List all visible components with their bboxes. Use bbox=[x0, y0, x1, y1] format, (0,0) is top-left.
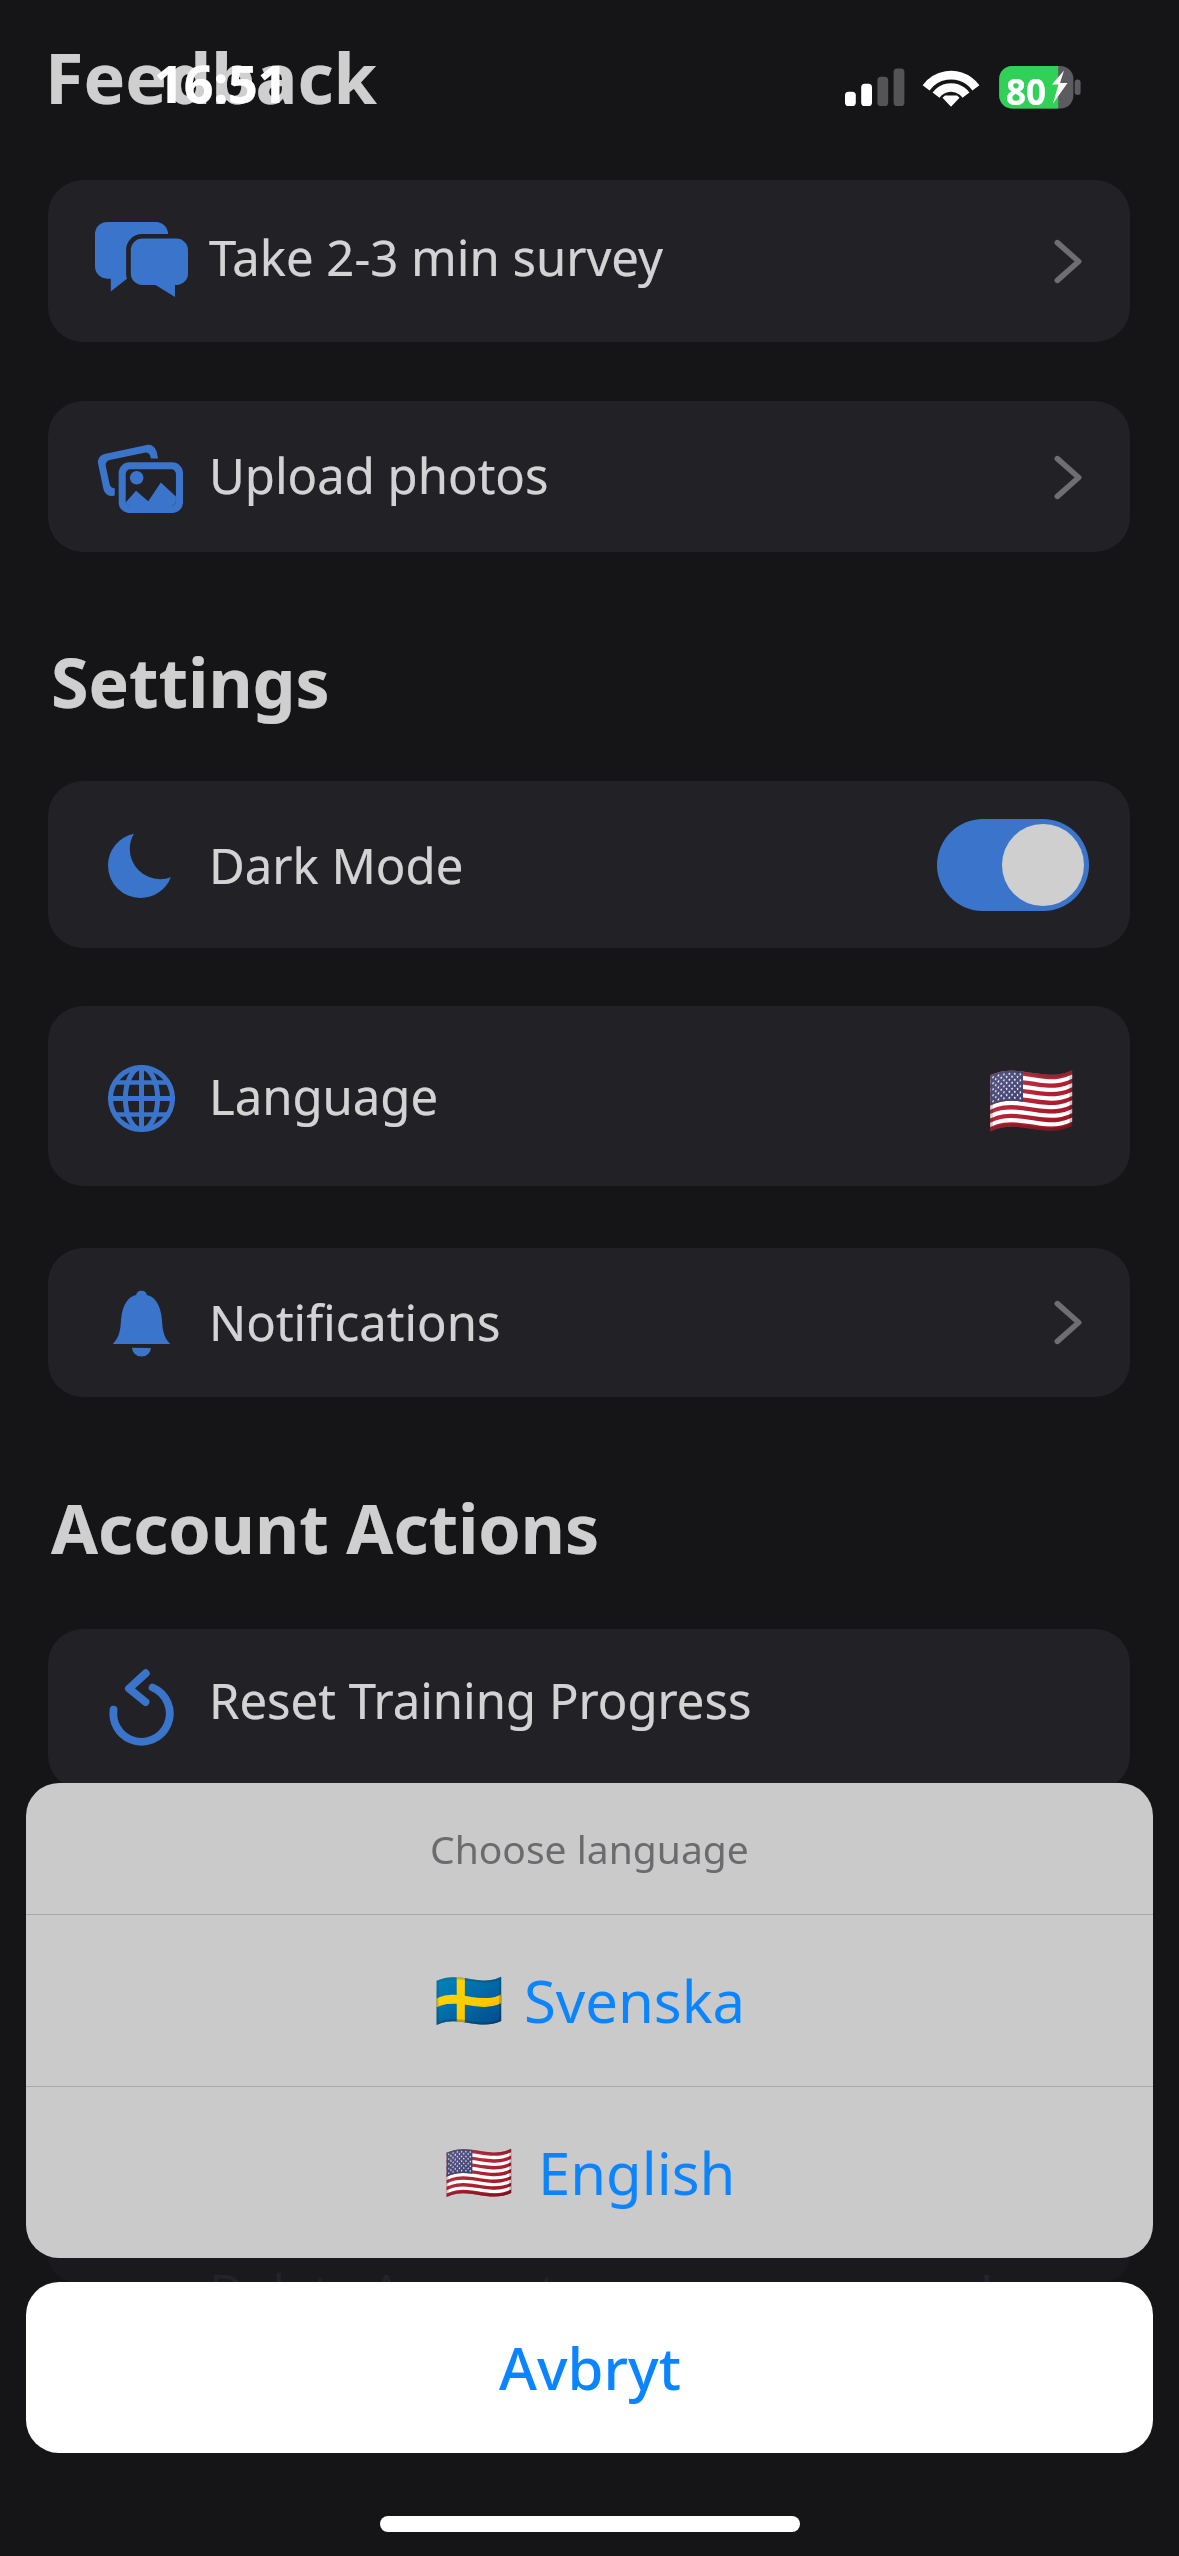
button[interactable]: 🇸🇪 bbox=[26, 1915, 1153, 2086]
button[interactable]: Language bbox=[48, 1006, 1130, 1186]
button[interactable]: Upload photos bbox=[48, 401, 1130, 552]
staticText: 🇺🇸 bbox=[987, 1059, 1076, 1142]
button[interactable]: Take 2-3 min survey bbox=[48, 180, 1130, 342]
staticText: Upload photos bbox=[209, 442, 549, 509]
staticText: Notifications bbox=[209, 1289, 501, 1356]
staticText: Dark Mode bbox=[209, 832, 464, 899]
staticText: Settings bbox=[51, 635, 330, 728]
button[interactable]: Notifications bbox=[48, 1248, 1130, 1397]
staticText: Avbryt bbox=[499, 2328, 681, 2407]
staticText: Delete Account bbox=[209, 2258, 557, 2325]
staticText: Account Actions bbox=[51, 1481, 600, 1574]
button[interactable]: Avbryt bbox=[26, 2282, 1153, 2453]
staticText: ! bbox=[980, 2258, 994, 2325]
staticText: 🇸🇪 bbox=[434, 1968, 504, 2034]
staticText: 80 bbox=[1006, 68, 1047, 116]
button[interactable]: 🇺🇸 bbox=[26, 2087, 1153, 2258]
staticText: Language bbox=[209, 1063, 439, 1130]
button[interactable]: Dark Mode bbox=[48, 781, 1130, 948]
button[interactable]: Reset Training Progress bbox=[48, 1629, 1130, 1790]
staticText: Reset Training Progress bbox=[209, 1667, 752, 1734]
staticText: 🇺🇸 bbox=[444, 2140, 514, 2206]
staticText: Feedback bbox=[45, 29, 377, 124]
staticText: 16:51 bbox=[154, 47, 288, 118]
staticText: English bbox=[538, 2133, 736, 2212]
staticText: Svenska bbox=[524, 1961, 746, 2040]
button[interactable]: Dark Mode toggle bbox=[937, 819, 1089, 911]
staticText: Choose language bbox=[430, 1822, 749, 1875]
staticText: Take 2-3 min survey bbox=[209, 224, 663, 291]
